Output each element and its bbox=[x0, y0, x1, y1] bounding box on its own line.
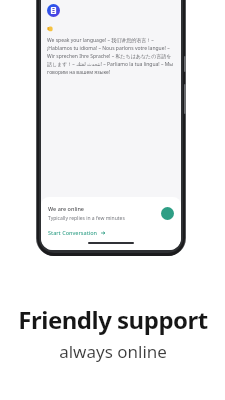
staticText: We speak your language! – 我们讲您的语言！– ¡Hab… bbox=[47, 37, 175, 76]
other: Brand avatar bbox=[47, 4, 60, 17]
staticText: Friendly support bbox=[18, 303, 208, 336]
button[interactable]: Start Conversation bbox=[48, 228, 105, 237]
staticText: Start Conversation bbox=[48, 229, 98, 236]
staticText: always online bbox=[59, 340, 167, 363]
staticText: Typically replies in a few minutes bbox=[48, 215, 125, 222]
staticText: We are online bbox=[48, 205, 84, 212]
button[interactable]: Open chat bbox=[161, 207, 174, 220]
